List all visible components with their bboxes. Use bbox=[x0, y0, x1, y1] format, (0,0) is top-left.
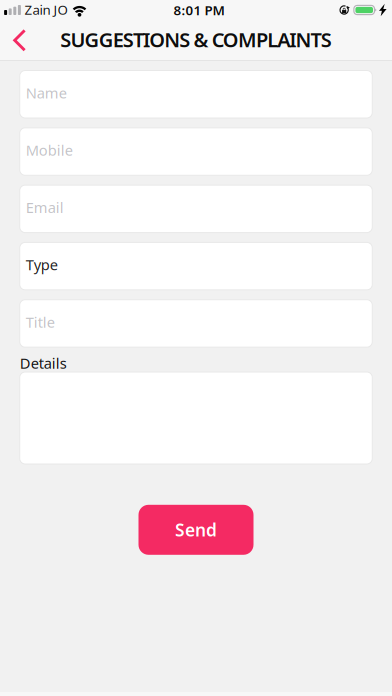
button[interactable]: Name bbox=[20, 70, 372, 118]
staticText: Name bbox=[26, 83, 67, 102]
staticText: Details bbox=[20, 353, 67, 373]
button[interactable]: Mobile bbox=[20, 128, 372, 175]
button[interactable]: Send bbox=[138, 505, 253, 555]
staticText: Send bbox=[175, 518, 217, 541]
staticText: SUGGESTIONS & COMPLAINTS bbox=[60, 26, 332, 53]
staticText: Type bbox=[26, 255, 58, 274]
staticText: 8:01 PM bbox=[173, 1, 224, 19]
button[interactable]: Type bbox=[20, 242, 372, 290]
button[interactable]: Details bbox=[20, 369, 372, 464]
button[interactable]: Title bbox=[20, 300, 372, 347]
staticText: Zain JO bbox=[24, 1, 67, 18]
button[interactable]: Back bbox=[0, 20, 38, 60]
staticText: Title bbox=[26, 312, 55, 332]
staticText: Mobile bbox=[26, 140, 73, 160]
button[interactable]: Email bbox=[20, 185, 372, 233]
staticText: Email bbox=[26, 198, 64, 217]
